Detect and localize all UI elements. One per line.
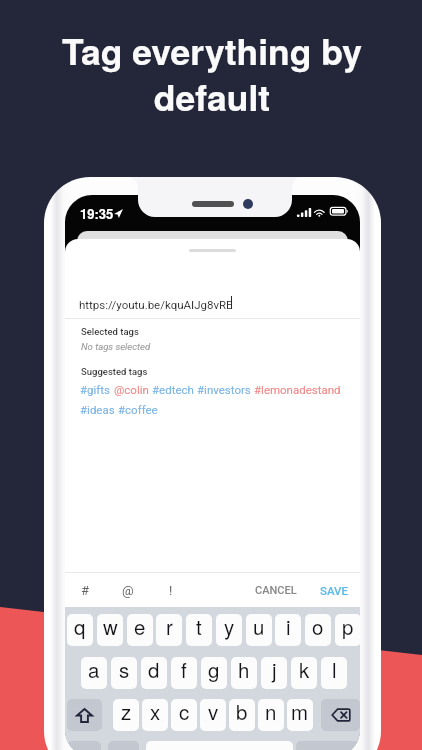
staticText: k bbox=[299, 657, 310, 683]
staticText: m bbox=[291, 699, 309, 725]
button[interactable]: l bbox=[321, 657, 347, 689]
button[interactable]: s bbox=[111, 657, 137, 689]
staticText: o bbox=[312, 614, 324, 640]
button[interactable]: #coffee bbox=[118, 403, 158, 416]
staticText: t bbox=[196, 614, 202, 640]
staticText: #lemonadestand bbox=[254, 383, 341, 396]
staticText: v bbox=[208, 699, 219, 725]
button[interactable]: @colin bbox=[114, 383, 149, 396]
staticText: #edtech bbox=[152, 383, 194, 396]
staticText: d bbox=[148, 657, 160, 683]
button[interactable]: z bbox=[113, 699, 139, 731]
button[interactable]: m bbox=[287, 699, 313, 731]
button[interactable]: Space bbox=[146, 741, 293, 750]
staticText: c bbox=[179, 699, 190, 725]
staticText: @colin bbox=[114, 383, 149, 396]
staticText: w bbox=[103, 614, 118, 640]
button[interactable]: g bbox=[201, 657, 227, 689]
button[interactable]: #gifts bbox=[80, 383, 111, 396]
button[interactable]: k bbox=[291, 657, 317, 689]
button[interactable]: n bbox=[258, 699, 284, 731]
button[interactable]: h bbox=[231, 657, 257, 689]
staticText: # bbox=[81, 583, 90, 598]
button[interactable]: SAVE bbox=[314, 575, 355, 606]
staticText: i bbox=[286, 614, 291, 640]
staticText: ! bbox=[169, 583, 173, 598]
button[interactable]: Backspace bbox=[321, 699, 360, 731]
button[interactable]: #lemonadestand bbox=[254, 383, 341, 396]
button[interactable]: t bbox=[186, 614, 212, 646]
staticText: b bbox=[236, 699, 248, 725]
staticText: #gifts bbox=[80, 383, 111, 396]
staticText: s bbox=[119, 657, 130, 683]
button[interactable]: o bbox=[305, 614, 331, 646]
button[interactable]: c bbox=[171, 699, 197, 731]
button[interactable]: #investors bbox=[197, 383, 251, 396]
staticText: CANCEL bbox=[255, 584, 297, 597]
button[interactable]: ! bbox=[159, 578, 183, 602]
button[interactable]: r bbox=[156, 614, 182, 646]
button[interactable]: x bbox=[142, 699, 168, 731]
button[interactable]: @ bbox=[116, 578, 140, 602]
staticText: q bbox=[74, 614, 86, 640]
staticText: No tags selected bbox=[81, 341, 151, 352]
staticText: #coffee bbox=[118, 403, 158, 416]
button[interactable]: e bbox=[127, 614, 153, 646]
staticText: 19:35 bbox=[80, 204, 114, 223]
button[interactable]: a bbox=[81, 657, 107, 689]
staticText: @ bbox=[122, 583, 134, 598]
staticText: Selected tags bbox=[81, 326, 139, 337]
staticText: u bbox=[253, 614, 265, 640]
staticText: https://youtu.be/kquAIJg8vRE bbox=[79, 298, 233, 311]
staticText: f bbox=[181, 657, 187, 683]
button[interactable]: p bbox=[335, 614, 360, 646]
staticText: n bbox=[265, 699, 277, 725]
staticText: z bbox=[121, 699, 132, 725]
button[interactable]: Return bbox=[296, 741, 360, 750]
staticText: l bbox=[332, 657, 337, 683]
button[interactable]: u bbox=[246, 614, 272, 646]
button[interactable]: # bbox=[73, 578, 97, 602]
button[interactable]: Numbers bbox=[67, 741, 101, 750]
button[interactable]: w bbox=[97, 614, 123, 646]
button[interactable]: CANCEL bbox=[249, 575, 303, 606]
staticText: h bbox=[238, 657, 250, 683]
button[interactable]: d bbox=[141, 657, 167, 689]
staticText: g bbox=[208, 657, 220, 683]
button[interactable]: y bbox=[216, 614, 242, 646]
button[interactable]: v bbox=[200, 699, 226, 731]
button[interactable]: f bbox=[171, 657, 197, 689]
button[interactable]: Shift bbox=[67, 699, 102, 731]
staticText: p bbox=[342, 614, 354, 640]
button[interactable]: q bbox=[67, 614, 93, 646]
staticText: SAVE bbox=[320, 584, 349, 597]
staticText: e bbox=[134, 614, 146, 640]
staticText: a bbox=[88, 657, 100, 683]
staticText: x bbox=[150, 699, 161, 725]
button[interactable]: i bbox=[275, 614, 301, 646]
button[interactable]: #edtech bbox=[152, 383, 194, 396]
button[interactable]: #ideas bbox=[80, 403, 115, 416]
staticText: Tag everything by default bbox=[1, 25, 422, 122]
staticText: y bbox=[224, 614, 235, 640]
staticText: r bbox=[166, 614, 173, 640]
button[interactable]: b bbox=[229, 699, 255, 731]
staticText: Suggested tags bbox=[81, 366, 148, 377]
staticText: #ideas bbox=[80, 403, 115, 416]
button[interactable]: j bbox=[261, 657, 287, 689]
staticText: j bbox=[272, 657, 277, 683]
staticText: #investors bbox=[197, 383, 251, 396]
